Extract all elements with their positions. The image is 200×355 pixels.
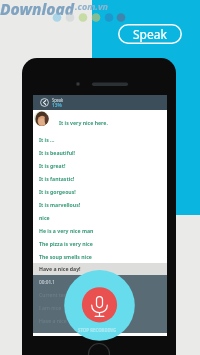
button[interactable]: It is marvellous! — [33, 198, 167, 211]
staticText: It is very nice here. — [59, 119, 108, 127]
button[interactable]: It is beautiful! — [33, 146, 167, 159]
staticText: Have a nice day — [39, 317, 77, 325]
button[interactable]: He is a very nice man — [33, 224, 167, 237]
staticText: Current text — [39, 291, 68, 299]
staticText: It is gorgeous! — [39, 188, 76, 196]
staticText: It is ... — [39, 136, 54, 144]
staticText: It is fantastic! — [39, 175, 75, 183]
staticText: STOP RECORDING — [78, 327, 117, 333]
button[interactable]: It is gorgeous! — [33, 185, 167, 198]
staticText: .com.vn — [75, 0, 108, 12]
staticText: It is beautiful! — [39, 149, 75, 157]
staticText: It is marvellous! — [39, 201, 80, 209]
button[interactable]: Back — [37, 95, 52, 110]
button[interactable]: Have a nice day! — [33, 263, 167, 275]
button[interactable]: It is very nice here. — [33, 110, 167, 133]
staticText: 00:01.1 — [39, 278, 55, 285]
staticText: The pizza is very nice — [39, 240, 93, 248]
staticText: nice — [39, 214, 50, 222]
staticText: Download — [0, 0, 75, 19]
button[interactable]: It is ... — [33, 133, 167, 146]
staticText: The soup smells nice — [39, 253, 92, 261]
staticText: 13% — [52, 101, 62, 109]
button[interactable]: Stop recording — [33, 95, 167, 336]
button[interactable]: It is fantastic! — [33, 172, 167, 185]
button[interactable]: Speak — [118, 24, 182, 44]
button[interactable]: It is great! — [33, 159, 167, 172]
button[interactable]: The pizza is very nice — [33, 237, 167, 250]
staticText: He is a very nice man — [39, 227, 94, 235]
staticText: It is great! — [39, 162, 66, 170]
staticText: I am nice — [39, 304, 61, 312]
staticText: Speak — [52, 97, 63, 103]
button[interactable]: The soup smells nice — [33, 250, 167, 263]
staticText: Have a nice day! — [39, 265, 81, 273]
button[interactable]: nice — [33, 211, 167, 224]
staticText: Speak — [133, 26, 167, 42]
